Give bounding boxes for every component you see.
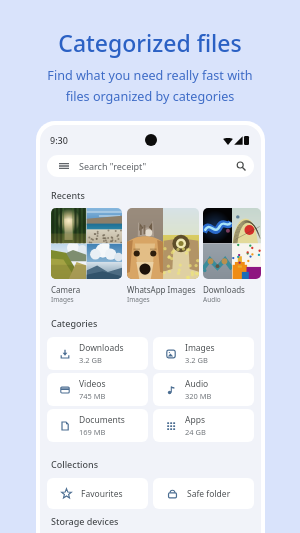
staticText: 3.2 GB <box>79 355 102 365</box>
staticText: Favourites <box>81 488 123 500</box>
staticText: Audio <box>203 295 221 304</box>
staticText: Images <box>127 295 150 304</box>
staticText: 24 GB <box>185 427 206 437</box>
button[interactable]: Apps <box>153 409 254 442</box>
staticText: 169 MB <box>79 427 106 437</box>
staticText: Storage devices <box>51 515 119 527</box>
staticText: Videos <box>79 378 106 390</box>
button[interactable]: Search "receipt" <box>47 155 254 177</box>
staticText: Downloads <box>79 342 124 354</box>
button[interactable]: Downloads <box>203 208 261 304</box>
button[interactable]: Favourites <box>47 478 148 509</box>
staticText: Camera <box>51 284 81 295</box>
button[interactable]: Safe folder <box>153 478 254 509</box>
button[interactable]: Downloads <box>47 337 148 370</box>
staticText: Downloads <box>203 284 245 295</box>
staticText: Collections <box>51 458 99 470</box>
staticText: WhatsApp Images <box>127 284 196 295</box>
button[interactable]: Images <box>153 337 254 370</box>
staticText: 745 MB <box>79 391 106 401</box>
button[interactable]: WhatsApp Images <box>127 208 199 304</box>
staticText: Apps <box>185 414 205 426</box>
staticText: Audio <box>185 378 209 390</box>
staticText: Search "receipt" <box>79 160 147 172</box>
staticText: 3.2 GB <box>185 355 208 365</box>
button[interactable]: Videos <box>47 373 148 406</box>
staticText: 320 MB <box>185 391 212 401</box>
button[interactable]: Audio <box>153 373 254 406</box>
staticText: Categorized files <box>58 27 242 58</box>
staticText: Safe folder <box>187 488 231 500</box>
staticText: Recents <box>51 189 85 201</box>
staticText: Categories <box>51 317 98 329</box>
button[interactable]: Camera <box>51 208 122 304</box>
staticText: Images <box>51 295 74 304</box>
staticText: Images <box>185 342 215 354</box>
staticText: Documents <box>79 414 125 426</box>
button[interactable]: Documents <box>47 409 148 442</box>
staticText: 9:30 <box>50 134 68 146</box>
staticText: Find what you need really fast with file… <box>47 67 253 105</box>
